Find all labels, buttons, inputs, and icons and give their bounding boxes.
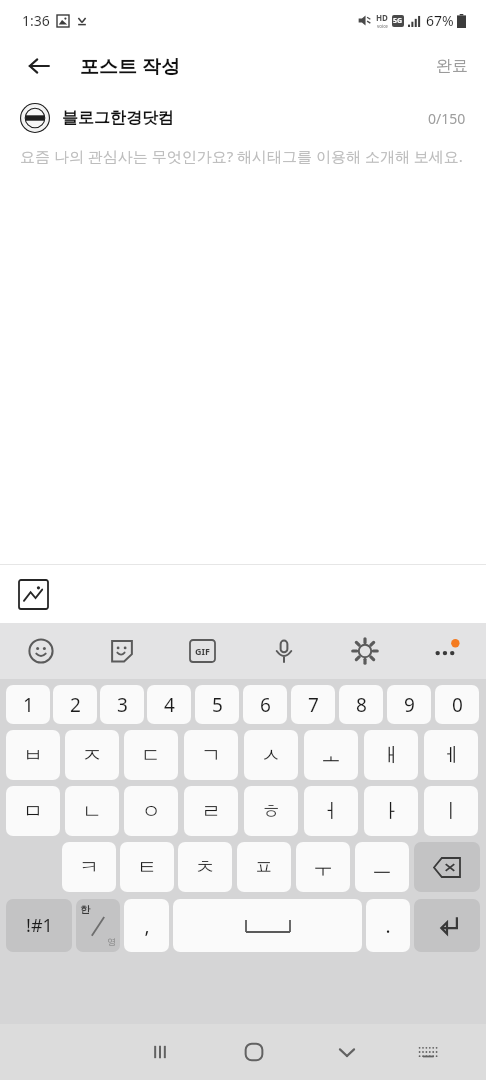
staticText: ㅁ (23, 799, 43, 824)
staticText: 7 (308, 692, 319, 718)
staticText: 블로그한경닷컴 (62, 108, 174, 128)
button[interactable]: Voice input (243, 623, 324, 679)
staticText: 67% (426, 11, 454, 30)
button[interactable]: 6 (243, 685, 287, 724)
staticText: ㅔ (441, 743, 461, 768)
button[interactable]: GIF (162, 623, 243, 679)
button[interactable]: 한 (76, 899, 120, 952)
button[interactable]: . (366, 899, 410, 952)
button[interactable]: Stickers (81, 623, 162, 679)
button[interactable]: ㄱ (184, 730, 238, 780)
staticText: ㅎ (261, 799, 281, 824)
button[interactable]: ㅂ (6, 730, 60, 780)
staticText: 1 (23, 692, 34, 718)
button[interactable]: ㄴ (65, 786, 119, 836)
staticText: 5G (393, 16, 403, 26)
button[interactable]: Emoji (0, 623, 81, 679)
button[interactable]: 8 (339, 685, 383, 724)
button[interactable]: 9 (387, 685, 431, 724)
button[interactable]: Recents (113, 1024, 207, 1080)
button[interactable]: Add image (12, 573, 54, 615)
staticText: GIF (195, 645, 210, 657)
staticText: 완료 (436, 56, 468, 76)
staticText: ㅣ (441, 799, 461, 824)
staticText: !#1 (26, 913, 53, 938)
button[interactable]: Home (207, 1024, 300, 1080)
button[interactable]: 0 (435, 685, 479, 724)
button[interactable]: !#1 (6, 899, 72, 952)
button[interactable]: ㅓ (304, 786, 358, 836)
button[interactable]: ㅣ (424, 786, 478, 836)
button[interactable]: Backspace (414, 842, 480, 892)
staticText: ㅅ (261, 743, 281, 768)
staticText: 5 (212, 692, 223, 718)
button[interactable]: ㅏ (364, 786, 418, 836)
staticText: ㅏ (381, 799, 401, 824)
button[interactable]: Back (18, 45, 60, 87)
staticText: 0 (452, 692, 463, 718)
staticText: ㅍ (254, 855, 274, 880)
button[interactable]: Hide keyboard (300, 1024, 393, 1080)
staticText: 영 (107, 936, 116, 947)
staticText: ㄴ (82, 799, 102, 824)
button[interactable]: 4 (147, 685, 191, 724)
staticText: 8 (356, 692, 367, 718)
staticText: . (385, 913, 391, 939)
button[interactable]: 7 (291, 685, 335, 724)
staticText: 1:36 (22, 11, 50, 30)
button[interactable]: ㄹ (184, 786, 238, 836)
button[interactable]: ㅗ (304, 730, 358, 780)
staticText: ㄹ (201, 799, 221, 824)
button[interactable]: , (124, 899, 169, 952)
button[interactable]: ㅐ (364, 730, 418, 780)
staticText: ㅜ (313, 855, 333, 880)
button[interactable]: ㅔ (424, 730, 478, 780)
staticText: 0/150 (428, 109, 466, 128)
button[interactable]: ㅈ (65, 730, 119, 780)
staticText: 6 (260, 692, 271, 718)
staticText: ㄱ (201, 743, 221, 768)
button[interactable]: Enter (414, 899, 480, 952)
button[interactable] (20, 103, 50, 133)
staticText: ㅋ (79, 855, 99, 880)
staticText: ㅊ (195, 855, 215, 880)
staticText: ㅡ (372, 855, 392, 880)
staticText: ㅂ (23, 743, 43, 768)
button[interactable]: ㅋ (62, 842, 116, 892)
button[interactable]: 5 (195, 685, 239, 724)
staticText: ㅓ (321, 799, 341, 824)
button[interactable]: Settings (324, 623, 405, 679)
staticText: 9 (404, 692, 415, 718)
button[interactable]: ㅁ (6, 786, 60, 836)
staticText: voice (377, 23, 388, 29)
button[interactable]: ㅎ (244, 786, 298, 836)
button[interactable]: 1 (6, 685, 50, 724)
button[interactable]: ㄷ (124, 730, 178, 780)
button[interactable]: ㅇ (124, 786, 178, 836)
staticText: ㅈ (82, 743, 102, 768)
button[interactable]: ㅅ (244, 730, 298, 780)
staticText: 한 (80, 903, 90, 916)
staticText: ㅌ (137, 855, 157, 880)
staticText: ㅗ (321, 743, 341, 768)
button[interactable]: Keyboard switcher (393, 1024, 463, 1080)
staticText: 포스트 작성 (80, 53, 180, 79)
button[interactable]: More options (405, 623, 486, 679)
button[interactable]: ㅡ (355, 842, 409, 892)
staticText: 요즘 나의 관심사는 무엇인가요? 해시태그를 이용해 소개해 보세요. (20, 146, 463, 166)
button[interactable]: Space (173, 899, 362, 952)
button[interactable]: ㅍ (237, 842, 291, 892)
staticText: HD (376, 12, 388, 23)
staticText: 2 (70, 692, 81, 718)
button[interactable]: 2 (53, 685, 97, 724)
staticText: ㅇ (141, 799, 161, 824)
staticText: 3 (117, 692, 128, 718)
button[interactable]: ㅜ (296, 842, 350, 892)
button[interactable]: 완료 (418, 46, 486, 86)
button[interactable]: ㅊ (178, 842, 232, 892)
button[interactable]: 3 (100, 685, 144, 724)
button[interactable]: ㅌ (120, 842, 174, 892)
staticText: , (144, 913, 150, 939)
staticText: ㅐ (381, 743, 401, 768)
staticText: 4 (164, 692, 175, 718)
